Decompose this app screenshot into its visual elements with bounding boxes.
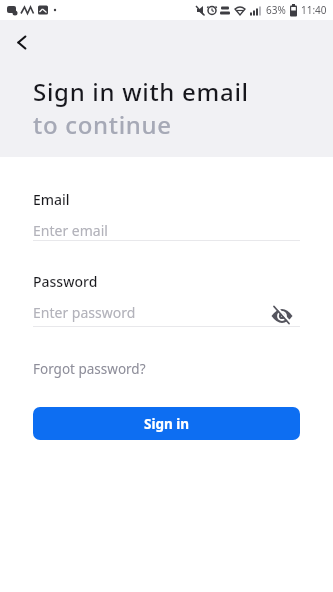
staticText: 11:40 [301,3,327,17]
staticText: Sign in [144,415,190,433]
button[interactable]: Sign in [33,407,300,440]
button[interactable]: Enter email [33,221,300,241]
button[interactable] [8,28,36,56]
button[interactable]: Forgot password? [33,360,146,378]
staticText: 63% [266,3,286,17]
staticText: Enter email [33,221,108,240]
staticText: Sign in with email [33,75,249,108]
staticText: to continue [33,108,172,141]
staticText: Enter password [33,303,136,322]
button[interactable] [271,305,293,327]
staticText: Email [33,190,70,209]
staticText: Password [33,272,98,291]
button[interactable]: Enter password [33,303,300,327]
